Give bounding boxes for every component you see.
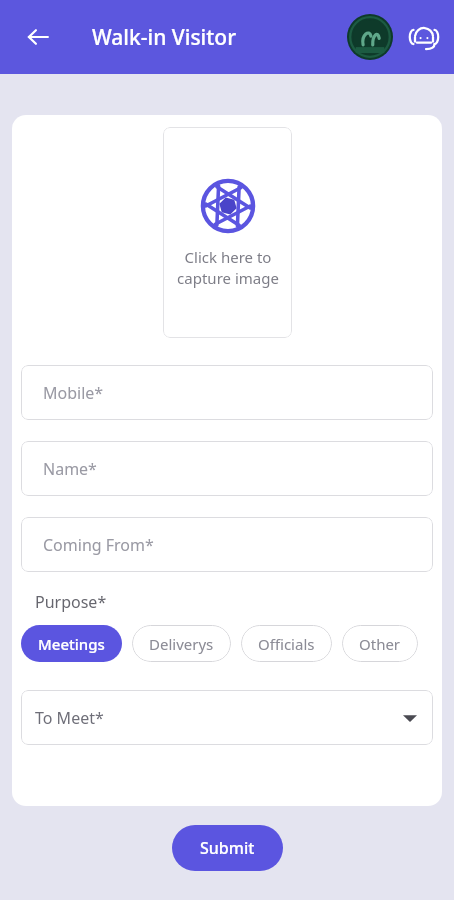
button[interactable]: Click here to capture image <box>163 127 292 338</box>
staticText: Click here to capture image <box>177 247 279 289</box>
staticText: To Meet* <box>35 707 104 729</box>
button[interactable]: Officials <box>241 625 332 662</box>
button[interactable]: Deliverys <box>132 625 231 662</box>
button[interactable]: Name* <box>21 441 433 496</box>
button[interactable]: Back <box>14 13 62 61</box>
staticText: Officials <box>258 634 315 654</box>
button[interactable]: Submit <box>172 825 283 871</box>
button[interactable]: Meetings <box>21 625 122 662</box>
staticText: Walk-in Visitor <box>92 23 237 52</box>
staticText: Other <box>359 634 401 654</box>
staticText: Submit <box>200 837 255 859</box>
staticText: Coming From* <box>43 534 154 556</box>
button[interactable]: Coming From* <box>21 517 433 572</box>
staticText: Name* <box>43 458 97 480</box>
staticText: Deliverys <box>149 634 214 654</box>
staticText: Meetings <box>38 634 105 654</box>
staticText: Purpose* <box>35 591 107 613</box>
staticText: Mobile* <box>43 382 104 404</box>
button[interactable]: Other <box>342 625 418 662</box>
button[interactable]: To Meet* <box>21 690 433 745</box>
button[interactable]: Company logo <box>344 11 396 63</box>
button[interactable]: Mobile* <box>21 365 433 420</box>
button[interactable]: Support <box>402 15 446 59</box>
